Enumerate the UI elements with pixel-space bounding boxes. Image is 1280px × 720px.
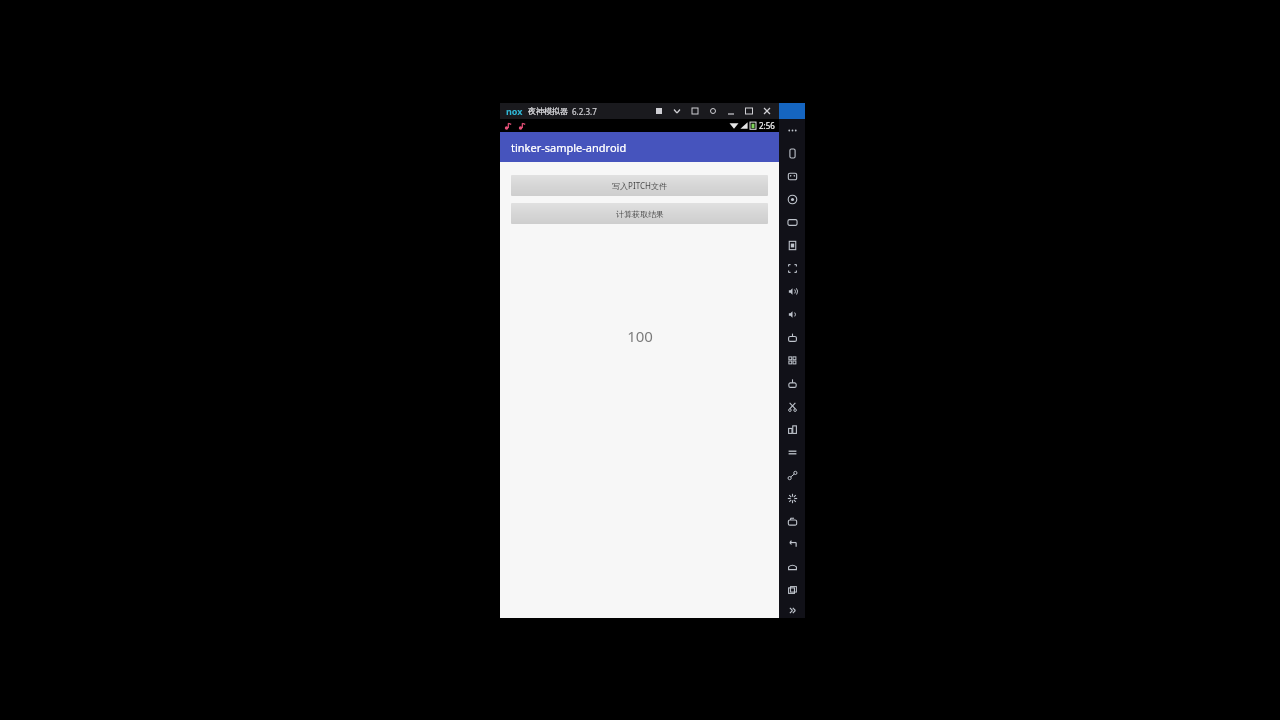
button[interactable]: 写入PITCH文件 <box>511 175 768 196</box>
button[interactable]: Home <box>779 556 805 579</box>
button[interactable]: Install APK <box>779 326 805 349</box>
button[interactable]: 计算获取结果 <box>511 203 768 224</box>
button[interactable]: Menu <box>779 441 805 464</box>
button[interactable]: Apps <box>779 234 805 257</box>
staticText: 6.2.3.7 <box>572 106 597 117</box>
staticText: 2:56 <box>759 120 775 131</box>
staticText: 100 <box>627 326 653 346</box>
button[interactable]: Rotate <box>779 418 805 441</box>
button[interactable]: Folder <box>779 510 805 533</box>
button[interactable]: Close <box>758 103 776 119</box>
staticText: 夜神模拟器 <box>528 106 568 116</box>
button[interactable]: Maximize <box>740 103 758 119</box>
button[interactable]: Cut <box>779 395 805 418</box>
button[interactable]: Location <box>779 188 805 211</box>
button[interactable]: Fullscreen <box>779 257 805 280</box>
button[interactable]: Volume down <box>779 303 805 326</box>
staticText: nox <box>506 105 523 117</box>
button[interactable]: Performance <box>779 487 805 510</box>
button[interactable]: Back <box>779 533 805 556</box>
staticText: tinker-sample-android <box>511 140 627 155</box>
button[interactable]: Shake <box>779 142 805 165</box>
button[interactable]: Expand <box>779 602 805 618</box>
button[interactable]: Settings <box>704 103 722 119</box>
button[interactable]: Transfer <box>686 103 704 119</box>
button[interactable]: Multi instance <box>779 349 805 372</box>
button[interactable]: Record <box>650 103 668 119</box>
button[interactable]: Volume up <box>779 280 805 303</box>
button[interactable]: More <box>668 103 686 119</box>
button[interactable]: More options <box>779 119 805 142</box>
button[interactable]: Script <box>779 464 805 487</box>
button[interactable]: Minimize <box>722 103 740 119</box>
button[interactable]: Share <box>779 372 805 395</box>
button[interactable]: Recents <box>779 579 805 602</box>
button[interactable]: Keyboard <box>779 165 805 188</box>
staticText: 计算获取结果 <box>616 209 664 219</box>
button[interactable]: Screen <box>779 211 805 234</box>
staticText: 写入PITCH文件 <box>612 180 667 191</box>
